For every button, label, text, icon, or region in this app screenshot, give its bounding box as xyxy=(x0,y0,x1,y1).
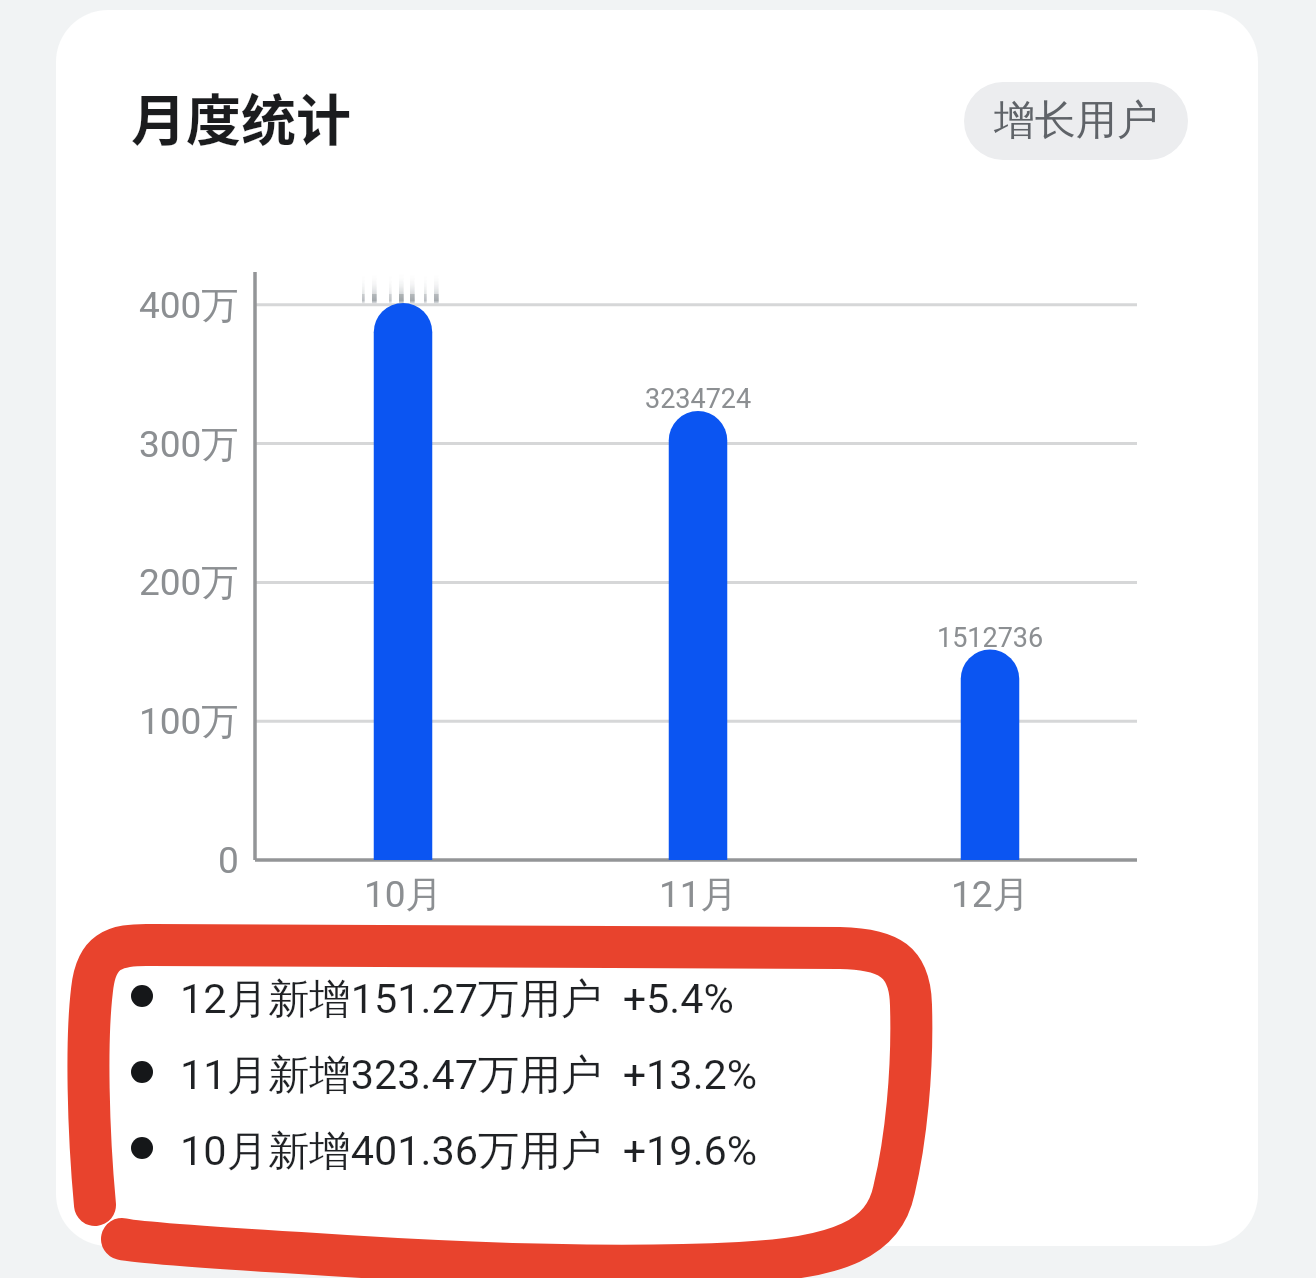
button[interactable] xyxy=(56,10,1258,1246)
staticText: 1512736 xyxy=(937,622,1044,654)
button[interactable]: 12月新增151.27万用户 +5.4% xyxy=(110,962,930,1030)
staticText: 月度统计 xyxy=(131,76,352,156)
staticText: 10月新增401.36万用户 +19.6% xyxy=(180,1125,758,1177)
staticText: 200万 xyxy=(139,559,239,606)
staticText: 100万 xyxy=(139,698,239,745)
button[interactable]: 增长用户 xyxy=(964,82,1188,160)
staticText: 12月新增151.27万用户 +5.4% xyxy=(180,973,734,1025)
button[interactable]: 10月新增401.36万用户 +19.6% xyxy=(110,1114,930,1182)
staticText: 12月 xyxy=(951,871,1030,918)
staticText: 11月新增323.47万用户 +13.2% xyxy=(180,1049,758,1101)
staticText: 400万 xyxy=(139,282,239,329)
staticText: 11月 xyxy=(659,871,738,918)
staticText: 300万 xyxy=(139,421,239,468)
staticText: 3234724 xyxy=(645,383,752,415)
staticText: 10月 xyxy=(364,871,443,918)
staticText: 0 xyxy=(218,839,239,882)
button[interactable]: 11月新增323.47万用户 +13.2% xyxy=(110,1038,930,1106)
staticText: 增长用户 xyxy=(994,95,1158,147)
other: Monthly user growth bar chart xyxy=(0,0,1316,1278)
